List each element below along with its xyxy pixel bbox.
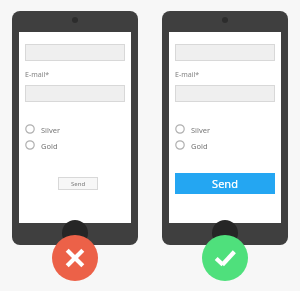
button[interactable] <box>175 85 275 102</box>
button[interactable]: Silver <box>174 122 244 136</box>
staticText: Send <box>212 176 238 191</box>
button[interactable]: Silver <box>24 122 94 136</box>
staticText: Silver <box>191 125 211 135</box>
staticText: Gold <box>41 141 58 151</box>
button[interactable] <box>25 44 125 61</box>
button[interactable]: Gold <box>174 138 244 152</box>
button[interactable] <box>175 44 275 61</box>
button[interactable]: Send <box>58 177 98 190</box>
button[interactable]: Send <box>175 173 275 194</box>
button[interactable]: Correct <box>202 235 248 281</box>
button[interactable]: Incorrect <box>52 235 98 281</box>
button[interactable] <box>25 85 125 102</box>
staticText: E-mail* <box>25 70 50 80</box>
staticText: Send <box>71 180 86 188</box>
staticText: Gold <box>191 141 208 151</box>
button[interactable]: Gold <box>24 138 94 152</box>
staticText: E-mail* <box>175 70 200 80</box>
staticText: Silver <box>41 125 61 135</box>
